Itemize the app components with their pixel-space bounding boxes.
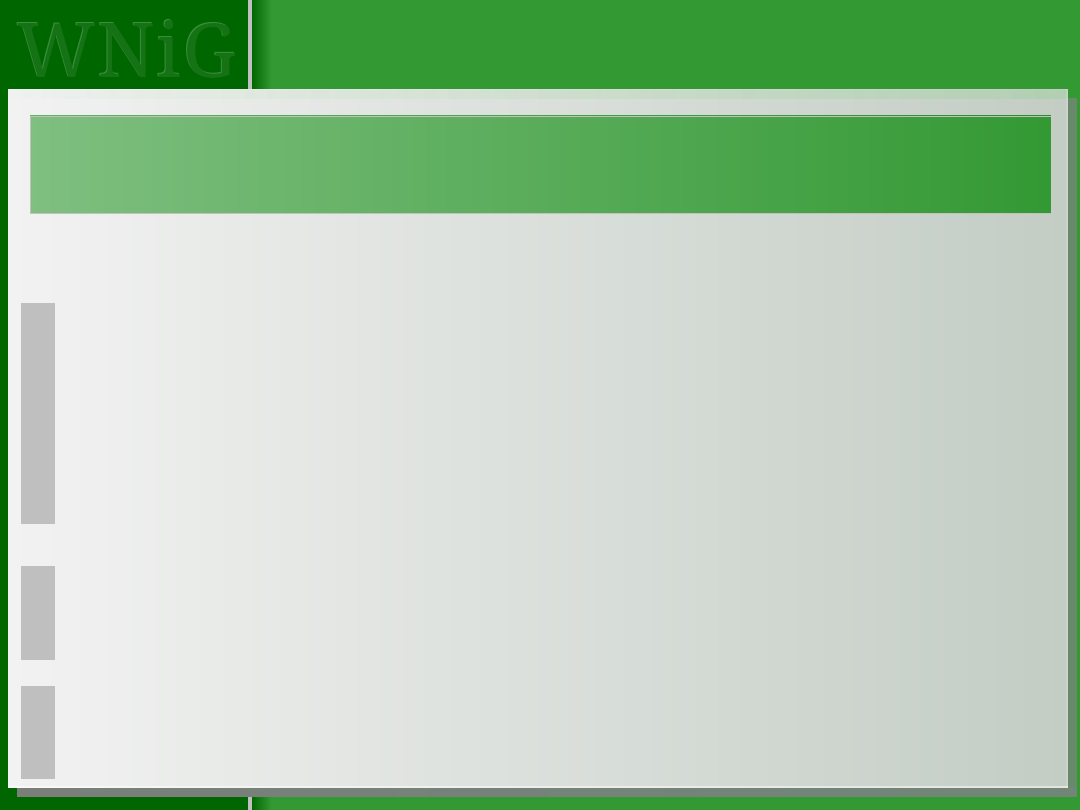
button[interactable]: Banner xyxy=(30,117,1051,213)
staticText: WNiG xyxy=(16,0,238,98)
button[interactable]: WNiG home xyxy=(17,0,239,99)
staticText: WNiG xyxy=(17,0,239,99)
